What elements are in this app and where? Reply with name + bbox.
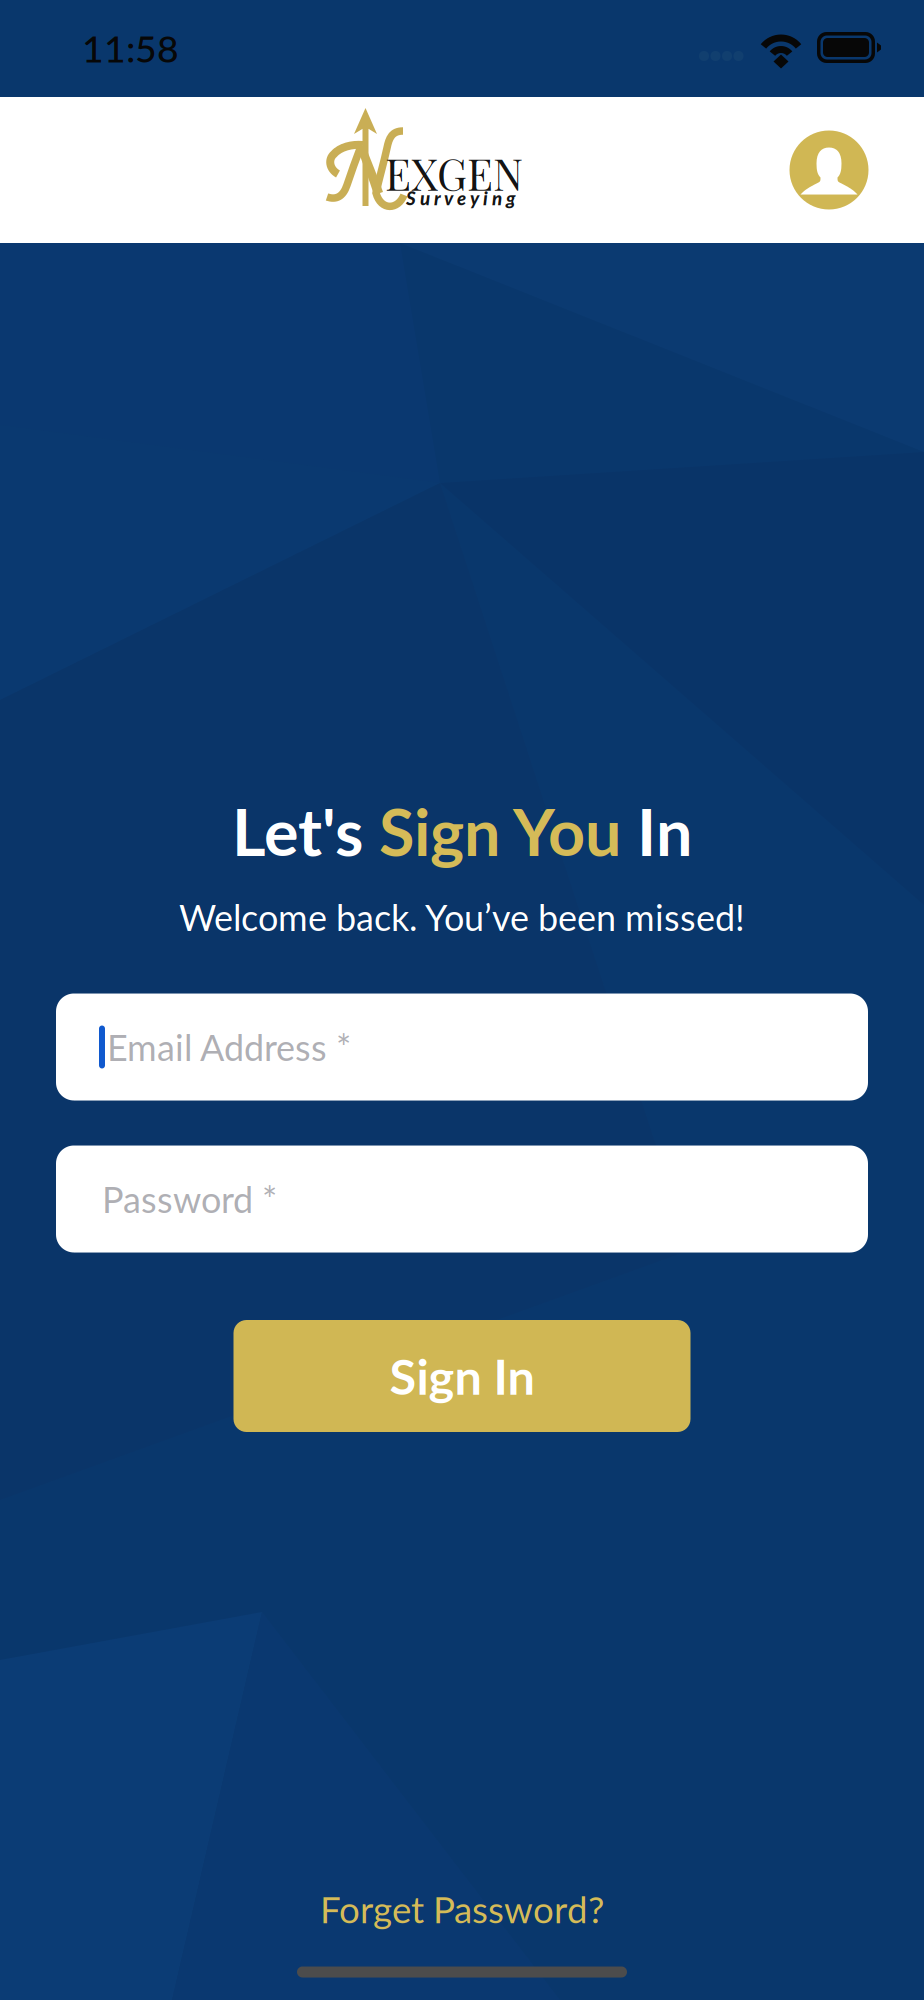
- staticText: Sign You: [379, 792, 637, 870]
- staticText: S u r v e y i n g: [406, 187, 516, 209]
- staticText: Email Address *: [107, 1025, 351, 1069]
- staticText: Forget Password?: [320, 1887, 604, 1931]
- staticText: In: [637, 792, 692, 870]
- staticText: Sign In: [389, 1347, 534, 1405]
- button[interactable]: Profile: [789, 130, 868, 209]
- button[interactable]: Sign In: [233, 1320, 690, 1432]
- staticText: Password *: [102, 1177, 277, 1221]
- staticText: Welcome back. You’ve been missed!: [179, 895, 745, 939]
- button[interactable]: Forget Password?: [320, 1887, 604, 1931]
- staticText: Let's: [232, 792, 379, 870]
- staticText: 11:58: [82, 26, 179, 70]
- staticText: EXGEN: [385, 145, 523, 201]
